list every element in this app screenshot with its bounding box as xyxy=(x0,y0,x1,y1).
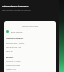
staticText: Transfer summary xyxy=(6,37,24,40)
staticText: Arrives in 1-2 days xyxy=(6,60,21,62)
staticText: Delivery xyxy=(6,56,14,58)
staticText: Bank transfer xyxy=(11,31,23,33)
staticText: Send money outside the country xyxy=(2,9,31,12)
staticText: Exchange rate 1.08 xyxy=(6,46,22,48)
staticText: Tracking included xyxy=(6,64,20,66)
staticText: International transfers xyxy=(2,5,29,8)
staticText: Fee 2.50 xyxy=(6,50,13,52)
button[interactable]: Bank transfer xyxy=(6,30,54,33)
staticText: Support 24/7 xyxy=(6,68,17,70)
staticText: Recipient gets 1,240.00 xyxy=(6,42,25,44)
staticText: Choose how to send xyxy=(22,25,39,27)
